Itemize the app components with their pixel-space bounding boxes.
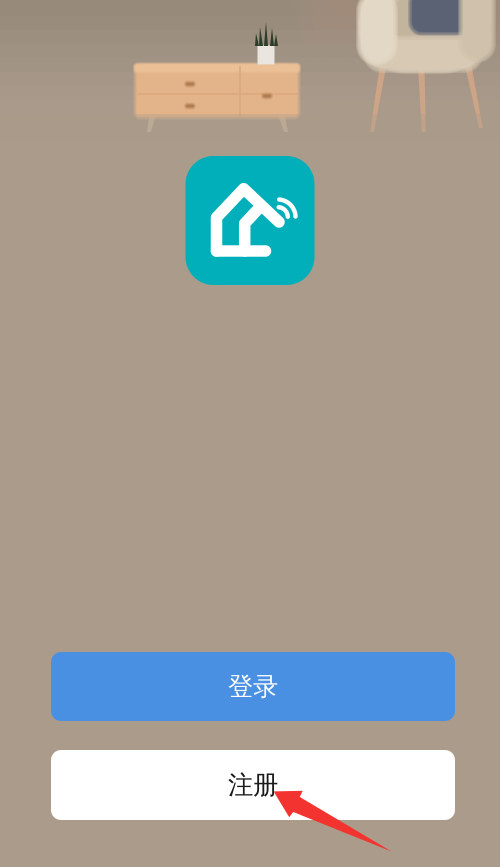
staticText: 注册 bbox=[228, 769, 278, 800]
button[interactable]: 登录 bbox=[51, 652, 455, 721]
staticText: 登录 bbox=[228, 671, 278, 702]
button[interactable]: 注册 bbox=[51, 750, 455, 820]
